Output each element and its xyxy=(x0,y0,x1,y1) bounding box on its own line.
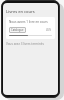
button[interactable]: Nous avons 1 livre en cours xyxy=(6,17,55,39)
staticText: Nous avons 1 livre en cours xyxy=(9,20,48,24)
staticText: Livres en cours xyxy=(6,9,35,14)
staticText: Vous avez 3 livres terminés xyxy=(6,42,44,46)
staticText: Catalogue xyxy=(11,28,24,32)
other: Progression de lecture xyxy=(9,35,52,36)
staticText: 45% xyxy=(46,28,52,32)
button[interactable]: Catalogue xyxy=(9,27,26,33)
